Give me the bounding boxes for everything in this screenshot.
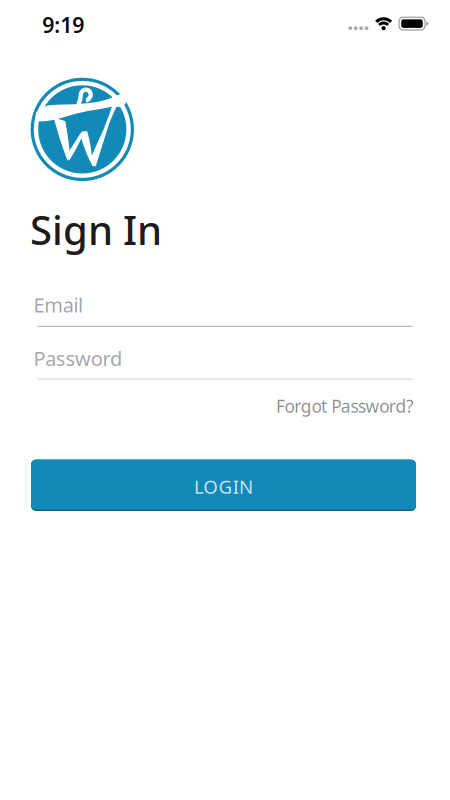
staticText: 9:19 — [42, 10, 84, 39]
staticText: Forgot Password? — [276, 394, 414, 417]
button[interactable]: Email — [33, 288, 414, 332]
button[interactable]: Forgot Password? — [264, 394, 414, 417]
staticText: Email — [33, 291, 83, 318]
staticText: Password — [33, 345, 122, 372]
staticText: Sign In — [30, 203, 162, 256]
staticText: LOGIN — [194, 474, 253, 499]
button[interactable]: LOGIN — [31, 460, 416, 510]
button[interactable]: Password — [33, 341, 414, 385]
